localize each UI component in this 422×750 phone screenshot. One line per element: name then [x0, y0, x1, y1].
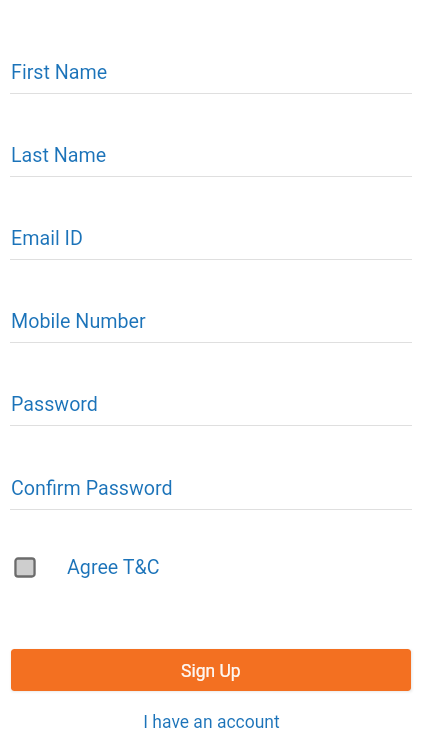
staticText: Confirm Password	[11, 477, 173, 500]
button[interactable]: I have an account	[0, 708, 422, 736]
staticText: Agree T&C	[67, 556, 160, 579]
button[interactable]: Confirm Password	[0, 472, 422, 509]
button[interactable]: Mobile Number	[0, 305, 422, 342]
staticText: Password	[11, 393, 98, 416]
staticText: Mobile Number	[11, 310, 146, 333]
staticText: First Name	[11, 61, 108, 84]
button[interactable]: Last Name	[0, 139, 422, 176]
staticText: Last Name	[11, 144, 107, 167]
button[interactable]: Agree to terms and conditions checkbox	[0, 552, 422, 582]
button[interactable]: Sign Up	[11, 649, 411, 691]
staticText: Email ID	[11, 227, 83, 250]
button[interactable]: First Name	[0, 56, 422, 93]
other: Agree to terms and conditions checkbox	[15, 558, 35, 577]
button[interactable]: Password	[0, 388, 422, 425]
staticText: Sign Up	[181, 661, 241, 682]
staticText: I have an account	[143, 712, 280, 733]
button[interactable]: Email ID	[0, 222, 422, 259]
